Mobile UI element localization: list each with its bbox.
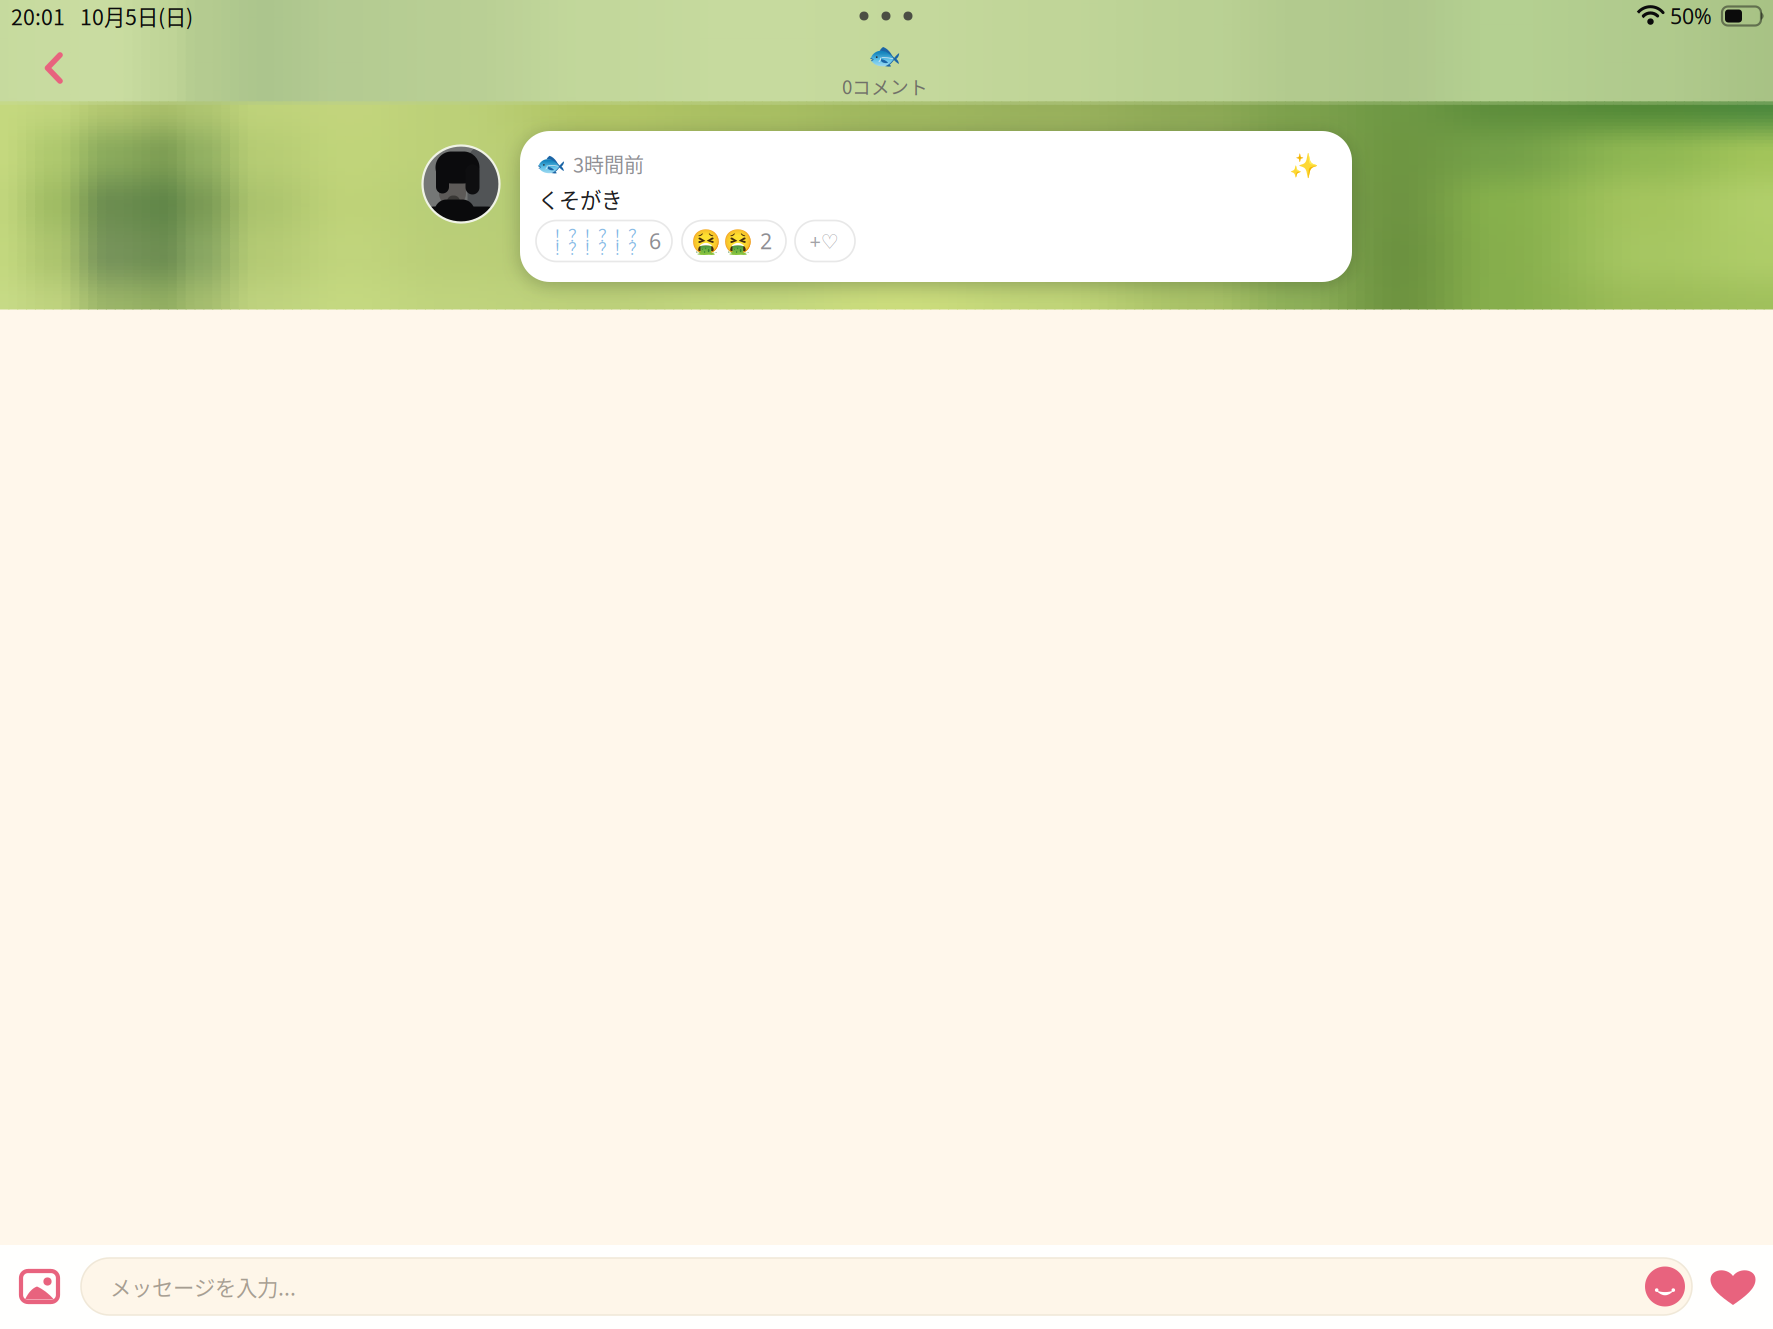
button[interactable]: 🤮 bbox=[682, 220, 786, 261]
staticText: 🐟 bbox=[536, 150, 566, 178]
staticText: 50% bbox=[1670, 2, 1712, 30]
staticText: くそがき bbox=[538, 184, 622, 214]
button[interactable]: 絵文字 bbox=[1643, 1264, 1687, 1308]
button[interactable]: ！？！？！？ bbox=[536, 220, 672, 261]
staticText: 🐟 bbox=[867, 41, 900, 71]
button[interactable]: いいね bbox=[1708, 1265, 1758, 1307]
staticText: +♡ bbox=[809, 228, 838, 254]
button[interactable]: 写真を送る bbox=[11, 1258, 67, 1314]
staticText: メッセージを入力... bbox=[110, 1271, 296, 1302]
staticText: 20:01 10月5日(日) bbox=[11, 1, 193, 31]
button[interactable]: リアクションを追加 bbox=[795, 220, 855, 261]
button[interactable]: 戻る bbox=[24, 40, 80, 96]
staticText: ！？！？！？ bbox=[550, 237, 640, 258]
staticText: ！？！？！？ bbox=[550, 224, 640, 245]
staticText: 0コメント bbox=[842, 72, 928, 99]
staticText: ✨ bbox=[1289, 152, 1319, 180]
staticText: 6 bbox=[649, 227, 661, 255]
button[interactable]: メッセージを入力... bbox=[81, 1258, 1692, 1315]
staticText: 🤮 bbox=[723, 228, 753, 255]
staticText: 🤮 bbox=[691, 228, 721, 255]
staticText: 3時間前 bbox=[573, 149, 644, 178]
staticText: 2 bbox=[760, 227, 772, 255]
